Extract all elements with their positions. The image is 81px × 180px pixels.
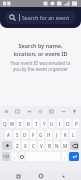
staticText: Search for an event (22, 14, 70, 21)
staticText: R (27, 121, 30, 127)
button[interactable]: I (57, 119, 63, 128)
button[interactable]: Z (14, 141, 20, 150)
staticText: G (39, 132, 43, 138)
staticText: S (16, 132, 19, 138)
staticText: A (7, 132, 10, 138)
button[interactable]: Shift (2, 141, 12, 150)
button[interactable]: U (49, 119, 55, 128)
staticText: X (24, 143, 27, 149)
button[interactable]: N (54, 141, 60, 150)
button[interactable]: A (5, 130, 12, 139)
staticText: L (72, 132, 75, 138)
button[interactable]: Search (69, 152, 79, 161)
button[interactable]: B (46, 141, 52, 150)
staticText: J (56, 132, 58, 138)
staticText: D (23, 132, 27, 138)
staticText: W (10, 121, 15, 127)
button[interactable]: K (62, 130, 68, 139)
staticText: Y (43, 121, 46, 127)
button[interactable]: V (38, 141, 44, 150)
staticText: N (55, 143, 59, 149)
button[interactable]: Keyboard tool 2 (26, 108, 33, 115)
button[interactable]: , (12, 152, 17, 161)
staticText: ?123 (3, 155, 10, 159)
staticText: H (47, 132, 51, 138)
staticText: . (64, 154, 66, 160)
button[interactable]: P (73, 119, 79, 128)
staticText: K (64, 132, 67, 138)
button[interactable]: J (54, 130, 60, 139)
staticText: I (59, 121, 61, 127)
button[interactable]: Q (2, 119, 7, 128)
staticText: Your event ID was emailed to you by the … (10, 60, 71, 72)
staticText: Q (3, 121, 7, 127)
staticText: P (75, 121, 78, 127)
button[interactable]: S (14, 130, 20, 139)
button[interactable]: Keyboard tool 5 (60, 108, 67, 115)
button[interactable]: . (62, 152, 67, 161)
staticText: T (35, 121, 38, 127)
button[interactable]: Voice input (71, 108, 78, 115)
button[interactable]: X (22, 141, 28, 150)
button[interactable]: M (62, 141, 68, 150)
button[interactable]: T (33, 119, 39, 128)
button[interactable]: Keyboard tool 1 (14, 108, 21, 115)
staticText: O (66, 121, 70, 127)
staticText: B (48, 143, 51, 149)
button[interactable]: G (38, 130, 44, 139)
button[interactable]: Recent apps (14, 172, 22, 180)
button[interactable]: Google (3, 108, 10, 115)
staticText: Z (16, 143, 19, 149)
button[interactable]: Backspace (70, 141, 79, 150)
button[interactable]: Back (59, 172, 67, 180)
staticText: V (40, 143, 43, 149)
staticText: E (19, 121, 22, 127)
staticText: U (50, 121, 54, 127)
button[interactable]: R (25, 119, 31, 128)
button[interactable]: Keyboard tool 3 (37, 108, 44, 115)
button[interactable]: O (65, 119, 71, 128)
button[interactable]: L (70, 130, 76, 139)
button[interactable]: C (30, 141, 36, 150)
button[interactable]: Home (37, 172, 45, 180)
staticText: Search by name, location, or event ID (10, 42, 71, 57)
button[interactable]: Symbols (2, 152, 10, 161)
button[interactable]: W (9, 119, 15, 128)
button[interactable]: Y (41, 119, 47, 128)
staticText: , (14, 154, 16, 160)
button[interactable]: D (22, 130, 28, 139)
staticText: C (32, 143, 35, 149)
button[interactable]: H (46, 130, 52, 139)
button[interactable]: F (30, 130, 36, 139)
staticText: M (63, 143, 68, 149)
staticText: F (32, 132, 35, 138)
button[interactable]: Emoji (19, 152, 24, 161)
button[interactable]: Search (5, 11, 76, 24)
button[interactable]: Keyboard tool 4 (48, 108, 55, 115)
button[interactable]: E (17, 119, 23, 128)
other: Search (9, 14, 16, 21)
